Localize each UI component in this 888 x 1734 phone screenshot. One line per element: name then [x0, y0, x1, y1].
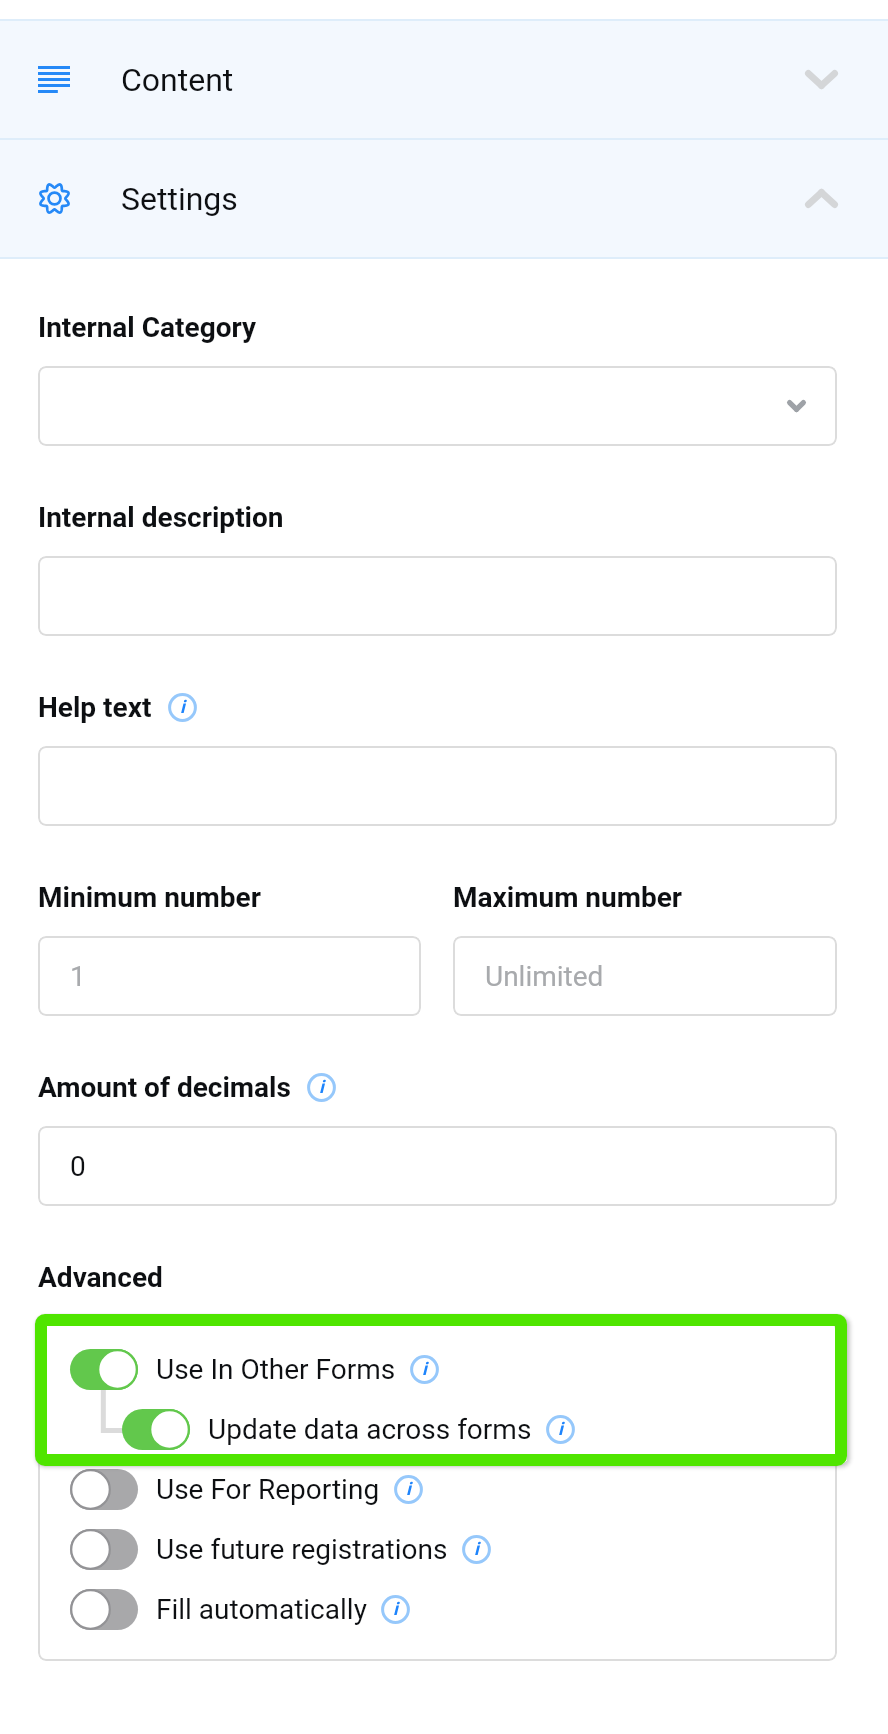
staticText: Fill automatically [156, 1593, 367, 1626]
button[interactable] [38, 746, 837, 826]
button[interactable]: Settings [0, 140, 888, 257]
staticText: Internal Category [38, 311, 257, 344]
button[interactable]: Content [0, 21, 888, 138]
staticText: Use future registrations [156, 1533, 448, 1566]
button[interactable]: Toggle off [70, 1589, 138, 1630]
staticText: i [422, 1358, 427, 1379]
staticText: i [319, 1076, 324, 1097]
button[interactable]: Toggle off [70, 1469, 138, 1510]
other: Expand Content [805, 70, 838, 89]
staticText: i [180, 696, 185, 717]
staticText: Maximum number [453, 881, 683, 914]
staticText: Settings [121, 180, 238, 218]
button[interactable] [38, 366, 837, 446]
staticText: Content [121, 61, 234, 99]
staticText: Advanced [38, 1261, 163, 1294]
other: Settings [38, 182, 71, 215]
other: Content [38, 66, 70, 93]
other: Collapse Settings [805, 189, 838, 208]
staticText: i [558, 1418, 563, 1439]
staticText: Internal description [38, 501, 284, 534]
staticText: Use For Reporting [156, 1473, 380, 1506]
staticText: Use In Other Forms [156, 1353, 396, 1386]
staticText: 0 [70, 1150, 86, 1183]
button[interactable]: Toggle on [122, 1409, 190, 1450]
button[interactable]: Toggle off [70, 1459, 837, 1519]
button[interactable]: Unlimited [453, 936, 837, 1016]
staticText: Unlimited [485, 960, 604, 993]
button[interactable]: 0 [38, 1126, 837, 1206]
button[interactable]: Toggle on [122, 1399, 837, 1459]
staticText: i [406, 1478, 411, 1499]
staticText: Amount of decimals [38, 1071, 291, 1104]
button[interactable]: Toggle off [70, 1529, 138, 1570]
staticText: Help text [38, 691, 152, 724]
button[interactable]: Toggle on [70, 1339, 837, 1399]
staticText: Minimum number [38, 881, 261, 914]
staticText: i [474, 1538, 479, 1559]
button[interactable] [38, 556, 837, 636]
button[interactable]: Toggle off [70, 1579, 837, 1639]
staticText: Update data across forms [208, 1413, 532, 1446]
staticText: 1 [70, 960, 86, 993]
button[interactable]: Toggle off [70, 1519, 837, 1579]
button[interactable]: 1 [38, 936, 421, 1016]
staticText: i [393, 1598, 398, 1619]
button[interactable]: Toggle on [70, 1349, 138, 1390]
